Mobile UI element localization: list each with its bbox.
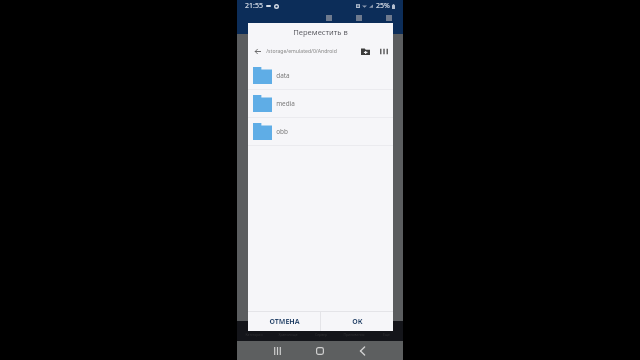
staticText: media — [276, 99, 295, 108]
staticText: Категории — [245, 332, 263, 337]
staticText: /storage/emulated/0/Android — [266, 48, 337, 55]
staticText: obb — [276, 127, 288, 136]
button[interactable]: Sort — [380, 48, 388, 55]
staticText: data — [276, 71, 290, 80]
button[interactable]: Back — [353, 342, 371, 360]
staticText: Хранилище — [278, 332, 298, 337]
button[interactable]: data — [248, 62, 393, 89]
button[interactable]: Recent apps — [268, 342, 286, 360]
button[interactable]: Back — [255, 48, 261, 55]
staticText: 25% — [376, 1, 390, 11]
staticText: Еще — [383, 332, 390, 337]
button[interactable]: obb — [248, 118, 393, 145]
staticText: ОТМЕНА — [269, 317, 300, 327]
staticText: ОК — [352, 317, 363, 327]
button[interactable]: media — [248, 90, 393, 117]
staticText: Сервер — [315, 332, 327, 337]
button[interactable]: ОТМЕНА — [248, 312, 320, 331]
button[interactable]: ОК — [321, 312, 393, 331]
staticText: Переместить в — [293, 27, 348, 37]
staticText: Приложения — [343, 332, 365, 337]
button[interactable]: New folder — [361, 48, 370, 55]
button[interactable]: Home — [311, 342, 329, 360]
staticText: 21:55 — [245, 1, 263, 11]
